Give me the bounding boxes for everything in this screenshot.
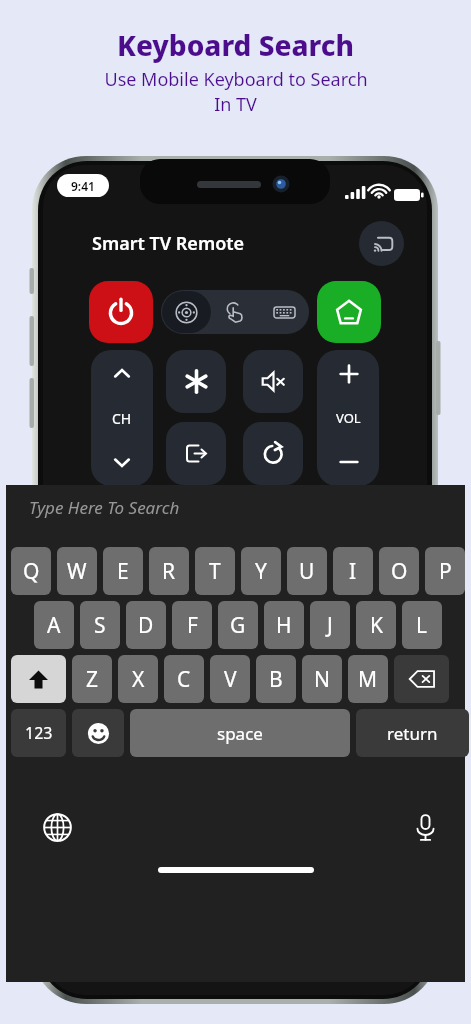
button[interactable]: Exit (166, 422, 226, 485)
staticText: 9:41 (71, 178, 95, 194)
button[interactable]: D (126, 601, 166, 649)
button[interactable]: Q (11, 547, 51, 595)
button[interactable]: M (348, 655, 388, 703)
button[interactable]: Volume (317, 350, 379, 486)
staticText: L (416, 611, 428, 640)
button[interactable]: Shift (11, 655, 66, 703)
button[interactable]: G (218, 601, 258, 649)
button[interactable]: Cast (359, 221, 404, 266)
button[interactable]: Emoji (72, 709, 124, 757)
button[interactable]: B (256, 655, 296, 703)
button[interactable]: Mute (243, 350, 303, 413)
button[interactable]: T (195, 547, 235, 595)
button[interactable]: Y (241, 547, 281, 595)
staticText: V (224, 665, 237, 694)
staticText: In TV (214, 92, 257, 117)
button[interactable]: S (80, 601, 120, 649)
button[interactable]: Home (317, 281, 381, 343)
button[interactable]: P (425, 547, 465, 595)
staticText: B (269, 665, 283, 694)
button[interactable]: Voice input (407, 809, 443, 845)
button[interactable]: Type Here To Search (6, 485, 465, 529)
staticText: X (132, 665, 145, 694)
button[interactable]: Power (89, 281, 153, 343)
staticText: E (117, 557, 129, 586)
staticText: CH (112, 409, 132, 428)
staticText: W (67, 557, 87, 586)
button[interactable]: Backspace (394, 655, 449, 703)
button[interactable]: J (310, 601, 350, 649)
button[interactable]: U (287, 547, 327, 595)
button[interactable]: Z (72, 655, 112, 703)
button[interactable]: F (172, 601, 212, 649)
button[interactable]: I (333, 547, 373, 595)
button[interactable]: space (130, 709, 350, 757)
button[interactable]: W (57, 547, 97, 595)
button[interactable]: H (264, 601, 304, 649)
staticText: Type Here To Search (29, 496, 180, 519)
staticText: 123 (25, 722, 53, 744)
staticText: U (299, 557, 315, 586)
button[interactable]: 123 (11, 709, 66, 757)
staticText: VOL (336, 409, 361, 427)
button[interactable]: Asterisk (166, 350, 226, 413)
staticText: H (276, 611, 292, 640)
button[interactable]: Touchpad mode (211, 291, 260, 333)
staticText: Smart TV Remote (92, 231, 245, 256)
staticText: I (349, 557, 357, 586)
staticText: O (391, 557, 408, 586)
staticText: J (327, 611, 333, 640)
button[interactable]: Keyboard mode (260, 291, 308, 333)
button[interactable]: A (34, 601, 74, 649)
staticText: Q (23, 557, 40, 586)
button[interactable]: X (118, 655, 158, 703)
button[interactable]: Refresh (243, 422, 303, 485)
staticText: P (439, 557, 452, 586)
staticText: C (177, 665, 191, 694)
button[interactable]: R (149, 547, 189, 595)
staticText: space (217, 722, 263, 745)
button[interactable]: C (164, 655, 204, 703)
staticText: K (370, 611, 383, 640)
button[interactable]: Change keyboard language (39, 809, 75, 845)
staticText: A (47, 611, 61, 640)
staticText: F (187, 611, 198, 640)
staticText: Use Mobile Keyboard to Search (104, 67, 368, 92)
button[interactable]: D-pad mode (162, 291, 211, 333)
staticText: N (314, 665, 330, 694)
staticText: R (162, 557, 176, 586)
button[interactable]: O (379, 547, 419, 595)
staticText: S (94, 611, 106, 640)
staticText: T (209, 557, 221, 586)
staticText: Keyboard Search (117, 26, 355, 64)
staticText: M (358, 665, 378, 694)
button[interactable]: Channel (91, 350, 153, 486)
staticText: return (387, 722, 438, 745)
button[interactable]: E (103, 547, 143, 595)
staticText: Z (86, 665, 99, 694)
button[interactable]: L (402, 601, 442, 649)
button[interactable]: return (356, 709, 469, 757)
button[interactable]: V (210, 655, 250, 703)
staticText: G (230, 611, 246, 640)
button[interactable]: K (356, 601, 396, 649)
staticText: Y (255, 557, 267, 586)
button[interactable]: N (302, 655, 342, 703)
staticText: D (138, 611, 154, 640)
